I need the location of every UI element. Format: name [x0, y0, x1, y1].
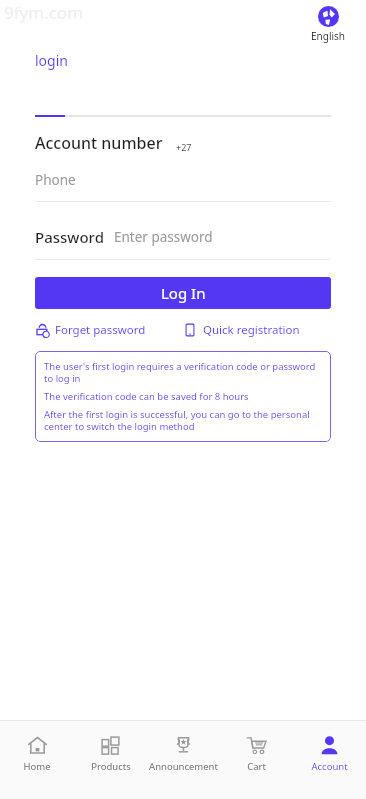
staticText: Cart — [247, 760, 266, 773]
button[interactable]: Account — [293, 721, 366, 799]
button[interactable]: Products — [74, 721, 147, 799]
staticText: The user's first login requires a verifi… — [44, 360, 322, 385]
staticText: 9fym.com — [4, 1, 84, 24]
staticText: +27 — [176, 141, 192, 153]
staticText: The verification code can be saved for 8… — [44, 390, 249, 403]
staticText: Quick registration — [203, 322, 300, 338]
staticText: Products — [91, 760, 131, 773]
button[interactable]: Home — [0, 721, 74, 799]
button[interactable]: Quick registration — [183, 320, 331, 340]
staticText: Home — [23, 760, 51, 773]
staticText: English — [311, 29, 346, 43]
button[interactable]: Log In — [35, 277, 331, 309]
button[interactable]: Announcement — [147, 721, 220, 799]
button[interactable]: Password — [35, 227, 331, 247]
button[interactable]: Account number — [35, 132, 331, 154]
staticText: Account — [311, 760, 348, 773]
staticText: Phone — [35, 171, 76, 189]
staticText: Enter password — [114, 228, 213, 246]
button[interactable]: Select language, English — [309, 5, 348, 44]
button[interactable]: Forget password — [35, 320, 183, 340]
button[interactable]: login — [28, 49, 75, 72]
staticText: Forget password — [55, 322, 146, 338]
staticText: login — [35, 51, 68, 70]
staticText: Account number — [35, 132, 163, 154]
staticText: Announcement — [149, 760, 218, 773]
button[interactable]: Phone — [35, 171, 331, 189]
staticText: After the first login is successful, you… — [44, 408, 322, 433]
button[interactable]: Cart — [220, 721, 293, 799]
staticText: Password — [35, 227, 104, 247]
staticText: Log In — [161, 283, 206, 303]
